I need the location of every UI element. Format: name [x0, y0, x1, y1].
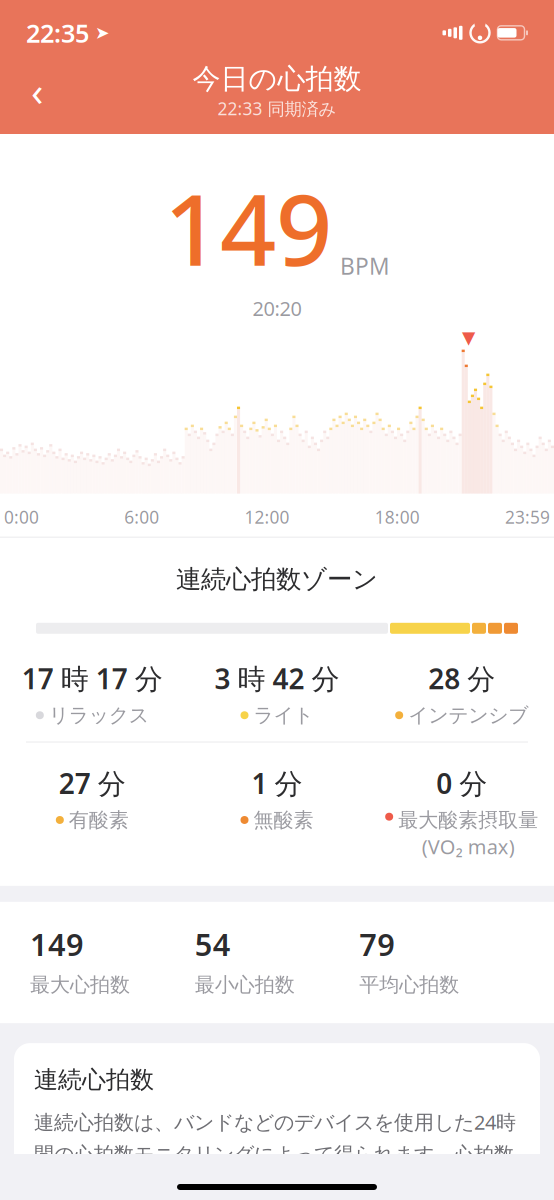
staticText: 149: [164, 162, 332, 293]
staticText: 最大心拍数: [30, 972, 130, 997]
staticText: 3 時 42 分: [214, 660, 339, 697]
staticText: 今日の心拍数: [192, 62, 361, 96]
staticText: 54: [195, 924, 231, 964]
staticText: インテンシブ: [408, 703, 528, 728]
staticText: 18:00: [375, 506, 420, 529]
staticText: リラックス: [49, 703, 149, 728]
staticText: 0 分: [436, 764, 487, 802]
staticText: 連続心拍数: [34, 1065, 154, 1095]
staticText: 有酸素: [69, 808, 129, 832]
button[interactable]: 戻る: [14, 68, 60, 114]
staticText: 1 分: [251, 764, 302, 802]
staticText: 平均心拍数: [359, 972, 459, 997]
staticText: 22:33 同期済み: [217, 97, 336, 120]
staticText: 12:00: [244, 506, 289, 529]
staticText: 20:20: [252, 295, 301, 322]
staticText: ‹: [31, 64, 43, 117]
staticText: 0:00: [4, 506, 39, 529]
staticText: 149: [30, 924, 84, 964]
staticText: 22:35: [26, 16, 89, 50]
staticText: 無酸素: [253, 808, 313, 832]
staticText: 17 時 17 分: [22, 660, 163, 697]
staticText: 最小心拍数: [195, 972, 295, 997]
staticText: BPM: [340, 251, 390, 281]
staticText: 最大酸素摂取量: [398, 808, 538, 832]
staticText: 連続心拍数は、バンドなどのデバイスを使用した24時間の心拍数モニタリングによって…: [34, 1109, 516, 1198]
staticText: ライト: [253, 703, 313, 728]
staticText: 27 分: [59, 764, 126, 802]
staticText: ➤: [95, 23, 110, 43]
staticText: 79: [359, 924, 395, 964]
staticText: 連続心拍数ゾーン: [176, 564, 378, 595]
staticText: (VO₂ max): [422, 833, 515, 860]
staticText: 28 分: [428, 660, 495, 697]
staticText: 6:00: [124, 506, 159, 529]
staticText: ▼: [462, 328, 475, 347]
staticText: 23:59: [505, 506, 550, 529]
